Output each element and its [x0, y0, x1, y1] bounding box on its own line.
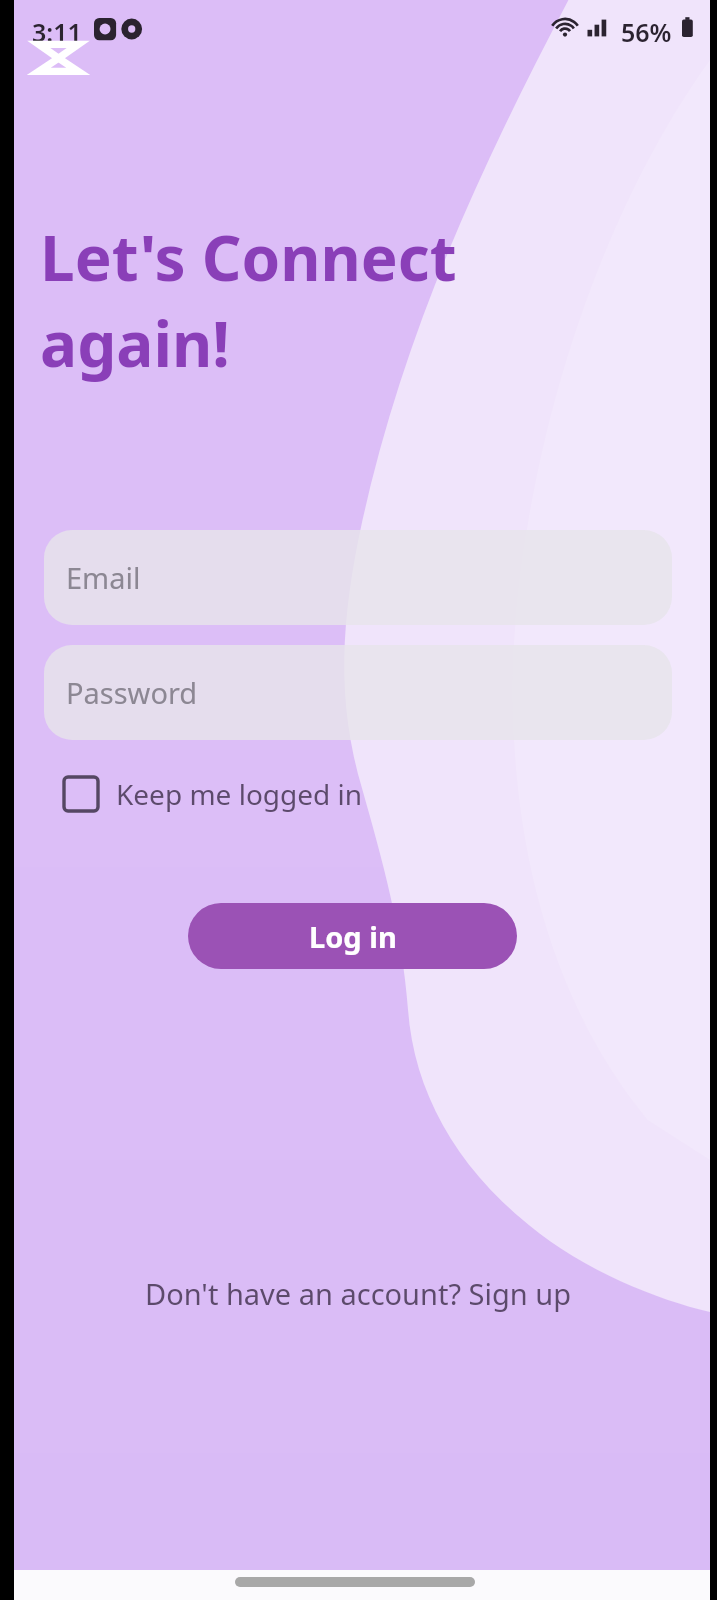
button[interactable]: Don't have an account? Sign up	[135, 1268, 581, 1319]
staticText: Keep me logged in	[116, 775, 363, 813]
button[interactable]: Keep me logged in	[58, 770, 338, 818]
staticText: Password	[66, 673, 198, 712]
button[interactable]: Email	[44, 530, 672, 625]
other: App logo	[36, 41, 81, 74]
button[interactable]: Log in	[188, 903, 517, 969]
staticText: Let's Connect again!	[40, 215, 457, 386]
staticText: Don't have an account? Sign up	[145, 1274, 571, 1313]
staticText: 3:11	[32, 15, 82, 49]
button[interactable]: Password	[44, 645, 672, 740]
staticText: Log in	[309, 917, 397, 956]
staticText: Email	[66, 558, 141, 597]
staticText: 56%	[621, 15, 672, 49]
